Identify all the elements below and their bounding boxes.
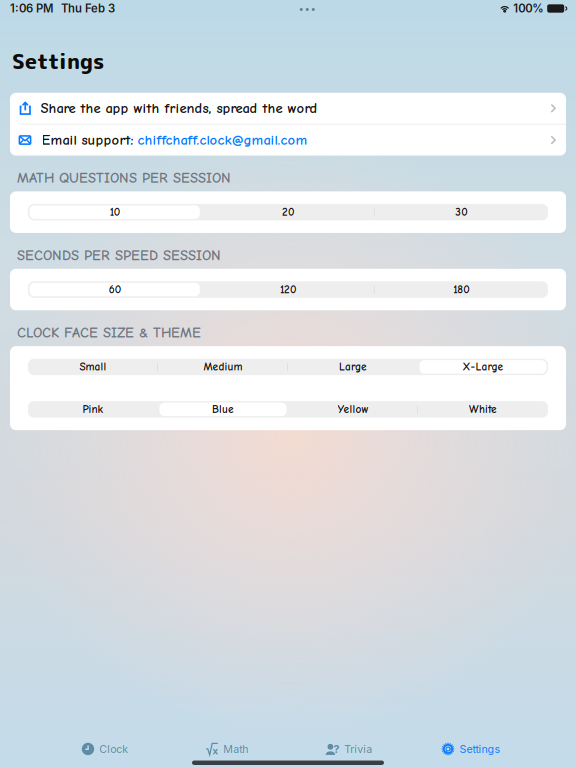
button[interactable]: Medium: [158, 359, 288, 375]
staticText: Pink: [82, 403, 103, 416]
button[interactable]: Pink: [28, 401, 158, 418]
staticText: Thu Feb 3: [61, 2, 115, 15]
button[interactable]: Share the app with friends, spread the w…: [10, 93, 566, 124]
staticText: chiffchaff.clock@gmail.com: [137, 132, 307, 148]
button[interactable]: X-Large: [418, 359, 548, 375]
staticText: Share the app with friends, spread the w…: [40, 100, 317, 117]
staticText: Blue: [212, 403, 234, 416]
staticText: Email support:: [41, 132, 133, 148]
staticText: MATH QUESTIONS PER SESSION: [17, 170, 231, 186]
staticText: 30: [455, 206, 467, 219]
button[interactable]: Blue: [158, 401, 288, 418]
button[interactable]: ?: [288, 730, 410, 768]
staticText: 20: [282, 206, 294, 219]
staticText: 120: [280, 283, 296, 296]
button[interactable]: Clock: [44, 730, 166, 768]
button[interactable]: 20: [201, 204, 375, 220]
button[interactable]: 30: [375, 204, 548, 220]
button[interactable]: 120: [201, 281, 375, 298]
staticText: SECONDS PER SPEED SESSION: [17, 247, 221, 264]
button[interactable]: 10: [28, 204, 201, 220]
staticText: Settings: [459, 742, 500, 755]
staticText: 100%: [513, 2, 543, 15]
staticText: Math: [223, 742, 248, 755]
staticText: CLOCK FACE SIZE & THEME: [17, 324, 201, 341]
button[interactable]: Settings: [410, 730, 532, 768]
staticText: Small: [79, 360, 106, 373]
button[interactable]: Large: [288, 359, 418, 375]
staticText: ?: [334, 742, 340, 755]
staticText: Large: [339, 360, 367, 373]
staticText: Yellow: [337, 403, 368, 416]
staticText: Medium: [203, 360, 242, 373]
staticText: 10: [110, 206, 120, 219]
button[interactable]: 180: [375, 281, 548, 298]
button[interactable]: Yellow: [288, 401, 418, 418]
staticText: • • •: [299, 3, 315, 14]
button[interactable]: Email support:: [10, 125, 566, 156]
button[interactable]: White: [418, 401, 548, 418]
staticText: 180: [453, 283, 469, 296]
staticText: 60: [109, 283, 121, 296]
button[interactable]: Small: [28, 359, 158, 375]
staticText: Clock: [99, 742, 128, 755]
staticText: White: [469, 403, 497, 416]
staticText: Settings: [12, 46, 104, 76]
button[interactable]: Math: [166, 730, 288, 768]
button[interactable]: 60: [28, 281, 201, 298]
staticText: 1:06 PM: [10, 2, 53, 15]
staticText: X-Large: [462, 360, 503, 373]
staticText: Trivia: [344, 742, 372, 755]
